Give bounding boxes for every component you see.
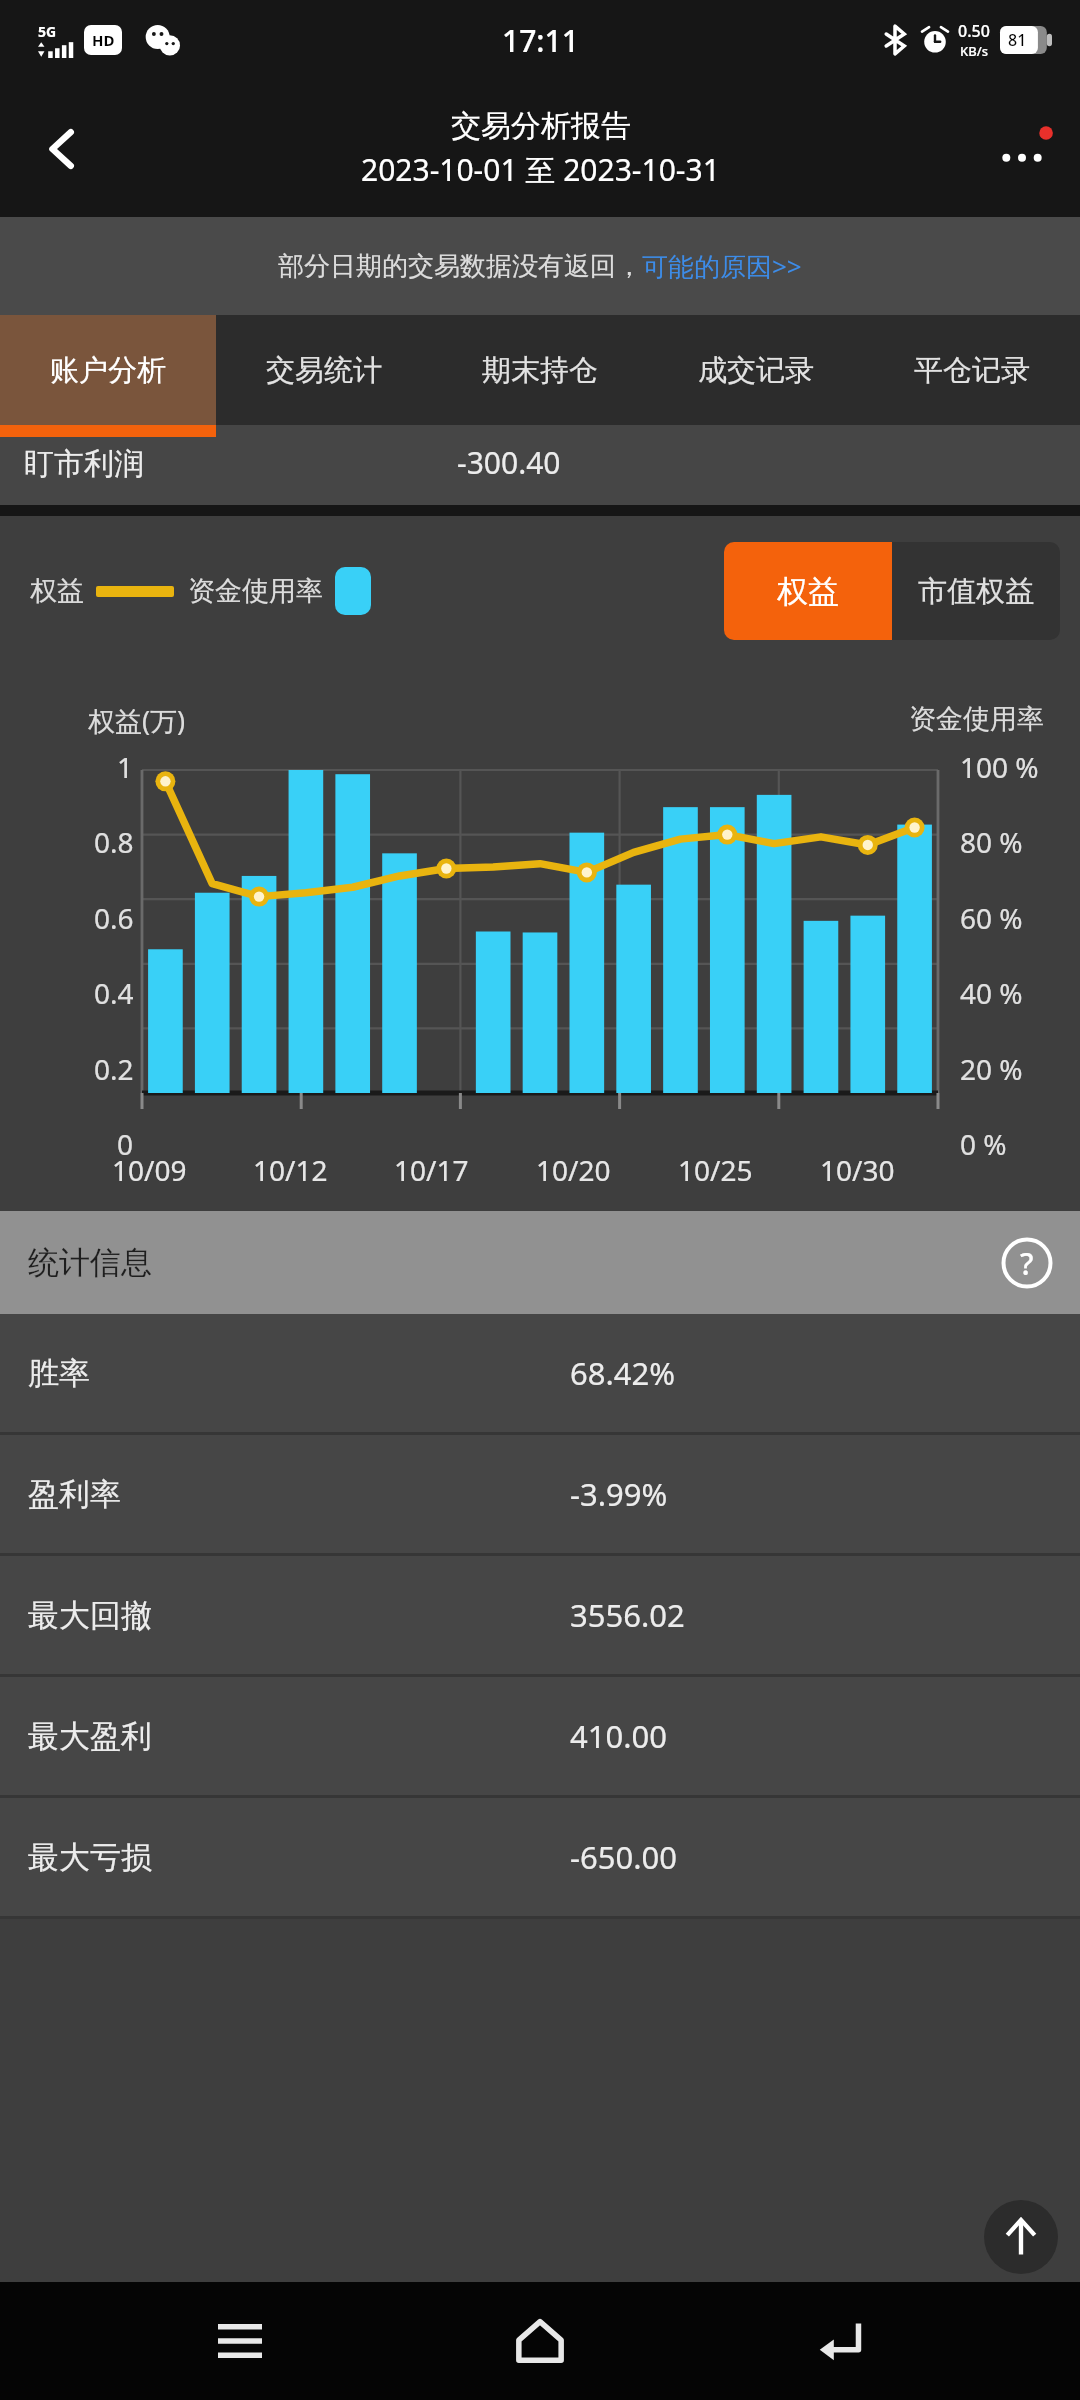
button[interactable]: 部分日期的交易数据没有返回， bbox=[0, 217, 1080, 315]
staticText: 平仓记录 bbox=[914, 352, 1030, 389]
button[interactable]: 最大盈利 bbox=[0, 1677, 1080, 1795]
staticText: 资金使用率 bbox=[909, 702, 1044, 736]
staticText: 17:11 bbox=[502, 20, 579, 61]
staticText: 0.8 bbox=[94, 823, 134, 861]
staticText: 20 % bbox=[960, 1050, 1023, 1088]
button[interactable]: Back bbox=[780, 2282, 900, 2400]
button[interactable]: 平仓记录 bbox=[864, 315, 1080, 425]
staticText: 市值权益 bbox=[918, 573, 1034, 610]
staticText: 0 bbox=[117, 1125, 134, 1163]
button[interactable]: 交易统计 bbox=[216, 315, 432, 425]
staticText: 0.4 bbox=[94, 974, 134, 1012]
staticText: 60 % bbox=[960, 899, 1023, 937]
staticText: 胜率 bbox=[28, 1354, 90, 1393]
button[interactable]: 市值权益 bbox=[892, 542, 1060, 640]
staticText: HD bbox=[92, 30, 115, 50]
staticText: 权益 bbox=[777, 572, 839, 611]
staticText: 账户分析 bbox=[50, 352, 166, 389]
button[interactable]: Recent apps bbox=[180, 2282, 300, 2400]
staticText: 10/30 bbox=[820, 1151, 895, 1189]
button[interactable]: 权益 bbox=[724, 542, 892, 640]
staticText: 40 % bbox=[960, 974, 1023, 1012]
staticText: 80 % bbox=[960, 823, 1023, 861]
button[interactable]: 期末持仓 bbox=[432, 315, 648, 425]
staticText: 成交记录 bbox=[698, 352, 814, 389]
staticText: ? bbox=[1020, 1243, 1034, 1284]
staticText: 2023-10-01 至 2023-10-31 bbox=[361, 149, 720, 190]
staticText: 68.42% bbox=[570, 1352, 675, 1394]
staticText: 0.2 bbox=[94, 1050, 134, 1088]
staticText: 10/12 bbox=[253, 1151, 328, 1189]
staticText: 1 bbox=[117, 748, 134, 786]
staticText: 81 bbox=[1008, 29, 1027, 51]
staticText: 期末持仓 bbox=[482, 352, 598, 389]
staticText: 权益 bbox=[30, 574, 84, 608]
button[interactable]: 成交记录 bbox=[648, 315, 864, 425]
staticText: 410.00 bbox=[570, 1715, 667, 1757]
button[interactable]: Scroll to top bbox=[984, 2200, 1058, 2274]
staticText: 10/17 bbox=[394, 1151, 469, 1189]
staticText: 3556.02 bbox=[570, 1594, 685, 1636]
button[interactable]: 胜率 bbox=[0, 1314, 1080, 1432]
staticText: 100 % bbox=[960, 748, 1039, 786]
staticText: 最大回撤 bbox=[28, 1596, 152, 1635]
staticText: 10/09 bbox=[112, 1151, 187, 1189]
button[interactable]: 盈利率 bbox=[0, 1435, 1080, 1553]
button[interactable]: 最大回撤 bbox=[0, 1556, 1080, 1674]
staticText: 盯市利润 bbox=[24, 445, 144, 483]
staticText: -3.99% bbox=[570, 1473, 668, 1515]
staticText: 10/25 bbox=[678, 1151, 753, 1189]
button[interactable]: More options bbox=[980, 107, 1064, 191]
staticText: 0.50 bbox=[958, 20, 990, 42]
staticText: 最大盈利 bbox=[28, 1717, 152, 1756]
staticText: 统计信息 bbox=[28, 1243, 152, 1282]
staticText: -300.40 bbox=[457, 442, 561, 483]
staticText: 0.6 bbox=[94, 899, 134, 937]
staticText: 可能的原因>> bbox=[642, 248, 802, 284]
button[interactable]: Back bbox=[20, 107, 104, 191]
staticText: 最大亏损 bbox=[28, 1838, 152, 1877]
staticText: 10/20 bbox=[536, 1151, 611, 1189]
button[interactable]: Help bbox=[996, 1232, 1058, 1294]
staticText: -650.00 bbox=[570, 1836, 677, 1878]
staticText: 5G bbox=[38, 22, 57, 41]
staticText: 盈利率 bbox=[28, 1475, 121, 1514]
staticText: 资金使用率 bbox=[188, 574, 323, 608]
staticText: KB/s bbox=[960, 42, 989, 60]
staticText: 交易分析报告 bbox=[451, 107, 631, 145]
staticText: 权益(万) bbox=[88, 702, 186, 739]
staticText: 部分日期的交易数据没有返回， bbox=[278, 250, 642, 283]
button[interactable]: Home bbox=[480, 2282, 600, 2400]
staticText: 交易统计 bbox=[266, 352, 382, 389]
staticText: 0 % bbox=[960, 1125, 1007, 1163]
button[interactable]: 账户分析 bbox=[0, 315, 216, 425]
button[interactable]: 最大亏损 bbox=[0, 1798, 1080, 1916]
